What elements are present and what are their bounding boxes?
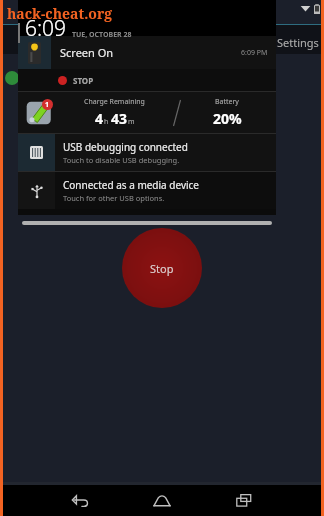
staticText: 6:09 [25, 14, 67, 43]
staticText: Touch for other USB options. [63, 193, 165, 203]
staticText: TUE, OCTOBER 28 [72, 30, 132, 40]
button[interactable]: Connected as a media device [18, 172, 276, 209]
staticText: 43 [111, 109, 128, 128]
staticText: h [104, 117, 109, 127]
staticText: Charge Remaining [84, 97, 145, 107]
button[interactable]: Stop [122, 228, 202, 308]
button[interactable]: Back [57, 485, 103, 516]
button[interactable]: Settings [277, 29, 321, 50]
staticText: Stop [150, 261, 174, 276]
staticText: 4 [95, 109, 104, 128]
button[interactable]: Recent apps [221, 485, 267, 516]
button[interactable]: STOP [18, 69, 276, 91]
button[interactable]: Screen On [18, 36, 276, 69]
staticText: USB debugging connected [63, 140, 188, 154]
staticText: Connected as a media device [63, 178, 199, 192]
button[interactable]: Home [139, 485, 185, 516]
staticText: 6:09 PM [241, 48, 268, 58]
staticText: 1 [45, 100, 50, 110]
staticText: hack-cheat.org [7, 4, 113, 23]
button[interactable]: Close notification shade [22, 221, 272, 225]
staticText: Touch to disable USB debugging. [63, 155, 180, 165]
staticText: STOP [73, 75, 94, 86]
staticText: m [128, 117, 135, 127]
button[interactable]: 1 [18, 92, 276, 133]
staticText: Screen On [60, 45, 114, 60]
staticText: 20% [213, 109, 242, 128]
staticText: Battery [215, 97, 239, 107]
button[interactable]: USB debugging connected [18, 134, 276, 171]
